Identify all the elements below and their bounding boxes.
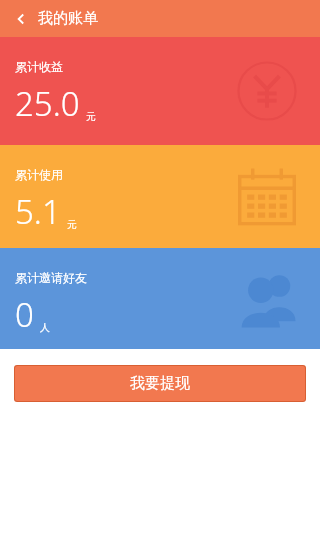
staticText: 我的账单 bbox=[38, 9, 98, 28]
staticText: 累计使用 bbox=[15, 167, 63, 182]
button[interactable]: Back bbox=[8, 6, 34, 32]
staticText: 5.1 bbox=[15, 189, 61, 234]
button[interactable]: 累计邀请好友 bbox=[0, 248, 320, 349]
staticText: 累计邀请好友 bbox=[15, 270, 87, 285]
button[interactable]: 累计收益 bbox=[0, 37, 320, 145]
staticText: 元 bbox=[86, 110, 96, 123]
staticText: 人 bbox=[40, 321, 50, 334]
staticText: 我要提现 bbox=[130, 374, 190, 393]
button[interactable]: 累计使用 bbox=[0, 145, 320, 248]
staticText: 元 bbox=[67, 218, 77, 231]
staticText: 0 bbox=[15, 292, 34, 337]
staticText: 累计收益 bbox=[15, 59, 63, 74]
button[interactable]: 我要提现 bbox=[15, 366, 305, 401]
staticText: 25.0 bbox=[15, 81, 80, 126]
